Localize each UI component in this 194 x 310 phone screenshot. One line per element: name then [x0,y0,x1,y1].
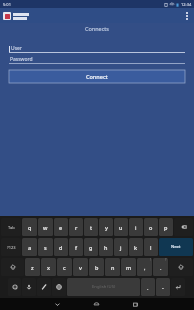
button[interactable]: j [114,238,128,256]
staticText: p [164,224,168,231]
button[interactable]: b [89,258,104,276]
staticText: d [59,244,63,251]
staticText: m [126,264,132,271]
button[interactable]: Settings [8,278,21,296]
button[interactable]: h [99,238,113,256]
staticText: b [95,264,99,271]
staticText: y [105,224,108,231]
button[interactable]: Backspace [174,218,193,236]
button[interactable]: - [156,278,170,296]
staticText: User [11,45,22,52]
button[interactable]: y [99,218,113,236]
button[interactable]: v [73,258,88,276]
button[interactable]: g [84,238,98,256]
button[interactable]: Home [77,298,116,310]
button[interactable]: . [153,258,168,276]
staticText: ? [165,258,167,262]
button[interactable]: l [144,238,158,256]
button[interactable]: n [105,258,120,276]
button[interactable]: w [38,218,53,236]
staticText: Connect [86,73,108,80]
staticText: . [160,264,162,271]
button[interactable]: z [25,258,40,276]
button[interactable]: Handwriting [37,278,51,296]
staticText: s [44,244,47,251]
staticText: n [111,264,115,271]
button[interactable]: o [144,218,158,236]
staticText: - [162,284,164,291]
staticText: , [144,264,146,271]
staticText: u [119,224,123,231]
staticText: g [89,244,93,251]
button[interactable]: p [159,218,173,236]
button[interactable]: Enter [171,278,185,296]
button[interactable]: a [22,238,37,256]
button[interactable]: Shift [169,258,193,276]
button[interactable]: i [129,218,143,236]
button[interactable]: , [137,258,152,276]
staticText: ! [150,258,151,262]
staticText: Connects [85,25,109,32]
staticText: ?123 [7,245,16,250]
button[interactable]: u [114,218,128,236]
button[interactable]: q [22,218,37,236]
button[interactable]: Password [9,54,185,64]
staticText: f [75,244,77,251]
staticText: c [63,264,66,271]
button[interactable]: t [84,218,98,236]
button[interactable]: d [54,238,68,256]
button[interactable]: x [41,258,56,276]
staticText: q [28,224,32,231]
staticText: h [104,244,108,251]
staticText: l [150,244,152,251]
button[interactable]: ?123 [1,238,21,256]
button[interactable]: r [69,218,83,236]
button[interactable]: m [121,258,136,276]
staticText: w [43,224,48,231]
staticText: Next [171,244,181,250]
button[interactable]: Tab [1,218,21,236]
staticText: a [28,244,32,251]
staticText: r [75,224,78,231]
staticText: 12:34 [181,2,192,7]
staticText: . [147,284,149,291]
button[interactable]: Recent apps [116,298,155,310]
button[interactable]: s [38,238,53,256]
button[interactable]: Voice input [22,278,36,296]
staticText: 5:01 [3,2,11,7]
staticText: x [47,264,50,271]
button[interactable]: Next [159,238,193,256]
button[interactable]: User [9,43,185,53]
button[interactable]: Change language [52,278,66,296]
button[interactable]: e [54,218,68,236]
button[interactable]: Back [38,298,77,310]
staticText: v [79,264,82,271]
button[interactable]: Connect [9,70,185,83]
staticText: Tab [8,225,15,230]
staticText: Password [10,56,33,63]
staticText: t [90,224,93,231]
button[interactable]: . [141,278,155,296]
staticText: e [59,224,63,231]
staticText: i [135,224,137,231]
button[interactable]: Shift [1,258,24,276]
staticText: k [134,244,138,251]
staticText: o [149,224,153,231]
staticText: j [120,244,122,251]
staticText: English (US) [92,284,116,290]
button[interactable]: c [57,258,72,276]
button[interactable]: More options [180,8,194,23]
button[interactable]: k [129,238,143,256]
button[interactable]: Space [67,278,140,296]
staticText: z [31,264,34,271]
button[interactable]: f [69,238,83,256]
